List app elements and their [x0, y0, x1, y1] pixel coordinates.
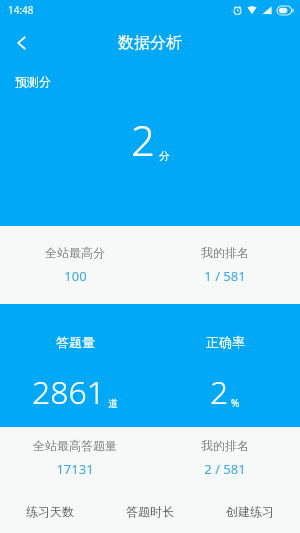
button[interactable]: Back [0, 21, 44, 65]
staticText: 数据分析 [118, 33, 182, 53]
staticText: 2 [210, 370, 229, 414]
staticText: 100 [64, 267, 87, 285]
staticText: 1 / 581 [204, 267, 246, 285]
button[interactable]: 练习天数 [0, 489, 100, 533]
staticText: 17131 [56, 460, 94, 478]
staticText: % [231, 396, 240, 410]
staticText: 预测分 [15, 74, 51, 89]
staticText: 创建练习 [226, 504, 274, 519]
staticText: 答题时长 [126, 504, 174, 519]
staticText: 练习天数 [26, 504, 74, 519]
staticText: 正确率 [206, 334, 245, 350]
button[interactable]: 我的排名 [150, 427, 300, 489]
button[interactable]: 全站最高答题量 [0, 427, 150, 489]
button[interactable]: 全站最高分 [0, 226, 150, 304]
staticText: 全站最高答题量 [33, 438, 117, 453]
staticText: 我的排名 [201, 245, 249, 260]
button[interactable]: 我的排名 [150, 226, 300, 304]
button[interactable]: 答题时长 [100, 489, 200, 533]
staticText: 2 / 581 [204, 460, 246, 478]
staticText: 2 [131, 111, 155, 168]
staticText: 分 [159, 149, 170, 163]
button[interactable]: 创建练习 [200, 489, 300, 533]
staticText: 全站最高分 [45, 245, 105, 260]
staticText: 14:48 [8, 3, 34, 17]
staticText: 答题量 [56, 334, 95, 350]
staticText: 道 [108, 397, 118, 410]
staticText: 2861 [32, 370, 106, 414]
staticText: 我的排名 [201, 438, 249, 453]
